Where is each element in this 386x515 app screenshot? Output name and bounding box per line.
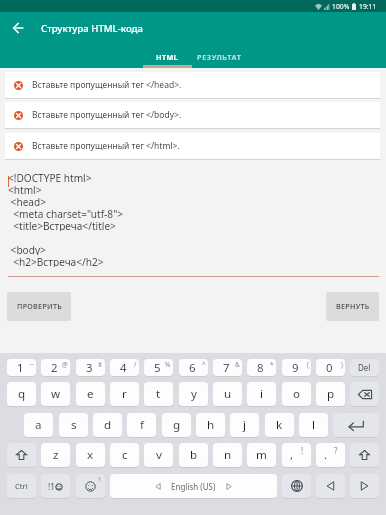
staticText: 100% xyxy=(332,2,350,11)
button[interactable]: o xyxy=(282,382,311,406)
staticText: j xyxy=(243,417,246,433)
button[interactable]: r xyxy=(110,382,139,406)
button[interactable]: 1 xyxy=(7,359,36,376)
button[interactable]: y xyxy=(179,382,208,406)
button[interactable]: l xyxy=(299,413,328,437)
staticText: <!DOCTYPE html> xyxy=(8,171,92,183)
staticText: HTML xyxy=(156,52,179,62)
staticText: s xyxy=(71,417,77,433)
button[interactable]: РЕЗУЛЬТАТ xyxy=(192,46,246,68)
button[interactable]: ВЕРНУТЬ xyxy=(326,292,379,320)
button[interactable]: h xyxy=(196,413,225,437)
staticText: . xyxy=(324,447,328,463)
staticText: x xyxy=(87,447,94,463)
button[interactable]: k xyxy=(265,413,294,437)
staticText: t xyxy=(156,386,161,402)
button[interactable]: Shift xyxy=(350,443,379,467)
staticText: y xyxy=(191,386,197,402)
button[interactable]: Backspace xyxy=(350,382,379,406)
staticText: Del xyxy=(358,362,371,373)
button[interactable]: Emoji xyxy=(76,474,105,498)
button[interactable]: c xyxy=(110,443,139,467)
staticText: l xyxy=(312,417,315,433)
staticText: g xyxy=(173,417,181,433)
button[interactable]: 7 xyxy=(213,359,242,376)
staticText: q xyxy=(18,386,26,402)
staticText: u xyxy=(224,386,232,402)
button[interactable]: Вставьте пропущенный тег </head>. xyxy=(5,72,380,98)
staticText: n xyxy=(224,447,232,463)
button[interactable]: Left xyxy=(316,474,345,498)
button[interactable]: 8 xyxy=(247,359,276,376)
staticText: <h2>Встреча</h2> xyxy=(8,255,104,267)
staticText: 9 xyxy=(292,360,299,376)
button[interactable]: w xyxy=(41,382,70,406)
button[interactable]: z xyxy=(41,443,70,467)
staticText: 6 xyxy=(189,360,196,376)
staticText: ( xyxy=(307,360,309,369)
button[interactable]: v xyxy=(144,443,173,467)
button[interactable]: s xyxy=(59,413,88,437)
staticText: 2 xyxy=(51,360,58,376)
button[interactable]: f xyxy=(127,413,156,437)
staticText: РЕЗУЛЬТАТ xyxy=(197,52,242,62)
button[interactable]: x xyxy=(76,443,105,467)
button[interactable]: . xyxy=(316,443,345,467)
staticText: Вставьте пропущенный тег </html>. xyxy=(32,140,180,152)
button[interactable]: , xyxy=(282,443,311,467)
button[interactable]: t xyxy=(144,382,173,406)
button[interactable]: 9 xyxy=(282,359,311,376)
button[interactable]: Enter xyxy=(333,413,379,437)
button[interactable]: 2 xyxy=(41,359,70,376)
staticText: 5 xyxy=(154,360,161,376)
button[interactable]: n xyxy=(213,443,242,467)
staticText: d xyxy=(104,417,112,433)
staticText: z xyxy=(53,447,59,463)
button[interactable]: Symbols xyxy=(41,474,70,498)
staticText: k xyxy=(276,417,283,433)
button[interactable]: b xyxy=(179,443,208,467)
staticText: c xyxy=(122,447,128,463)
button[interactable]: 6 xyxy=(179,359,208,376)
staticText: # xyxy=(98,360,103,369)
staticText: <title>Встреча</title> xyxy=(8,219,116,231)
button[interactable]: Right xyxy=(350,474,379,498)
button[interactable]: i xyxy=(247,382,276,406)
staticText: ) xyxy=(341,360,343,369)
button[interactable]: p xyxy=(316,382,345,406)
button[interactable]: q xyxy=(7,382,36,406)
button[interactable]: Вставьте пропущенный тег </body>. xyxy=(5,102,380,128)
staticText: & xyxy=(235,360,240,369)
button[interactable]: a xyxy=(24,413,53,437)
staticText: <body> xyxy=(8,243,46,255)
button[interactable]: 0 xyxy=(316,359,345,376)
button[interactable]: Вставьте пропущенный тег </html>. xyxy=(5,133,380,159)
button[interactable]: Del xyxy=(350,359,379,376)
button[interactable]: j xyxy=(230,413,259,437)
button[interactable]: 3 xyxy=(76,359,105,376)
button[interactable]: Ctrl xyxy=(7,474,36,498)
button[interactable]: Shift xyxy=(7,443,36,467)
button[interactable]: g xyxy=(162,413,191,437)
button[interactable]: m xyxy=(247,443,276,467)
button[interactable]: HTML xyxy=(143,46,192,68)
staticText: <head> xyxy=(8,195,46,207)
staticText: 8 xyxy=(257,360,264,376)
staticText: 4 xyxy=(120,360,127,376)
button[interactable]: u xyxy=(213,382,242,406)
button[interactable]: 4 xyxy=(110,359,139,376)
button[interactable]: Language xyxy=(282,474,311,498)
button[interactable]: e xyxy=(76,382,105,406)
staticText: / xyxy=(134,360,137,369)
button[interactable]: ПРОВЕРИТЬ xyxy=(7,292,71,320)
staticText: m xyxy=(256,447,267,463)
staticText: 0 xyxy=(326,360,333,376)
staticText: b xyxy=(190,447,198,463)
button[interactable]: Space xyxy=(110,474,277,498)
button[interactable]: Back xyxy=(1,11,35,45)
button[interactable]: 5 xyxy=(144,359,173,376)
staticText: 19:11 xyxy=(359,2,377,11)
staticText: a xyxy=(35,417,42,433)
button[interactable]: d xyxy=(93,413,122,437)
staticText: h xyxy=(207,417,215,433)
